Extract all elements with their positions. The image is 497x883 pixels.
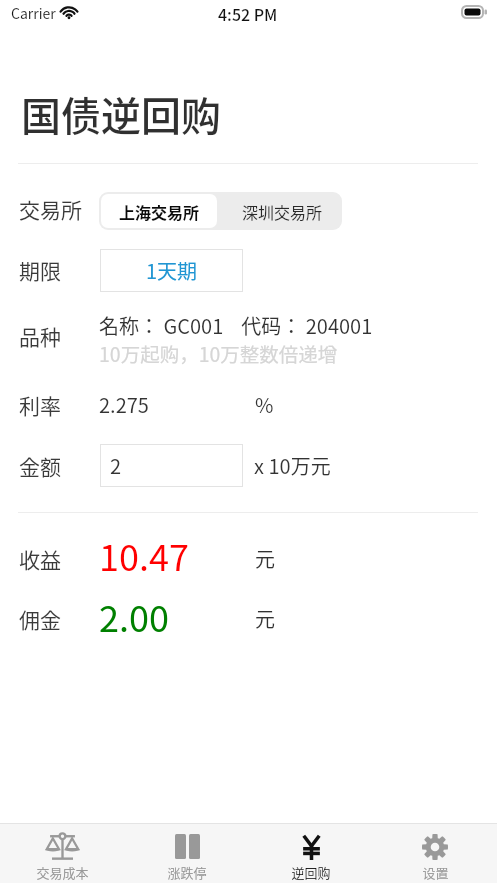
- staticText: 4:52 PM: [218, 2, 278, 25]
- staticText: 设置: [422, 863, 449, 882]
- button[interactable]: 2: [100, 444, 243, 487]
- staticText: 利率: [19, 390, 61, 420]
- staticText: 10万起购，10万整数倍递增: [99, 339, 338, 367]
- staticText: 元: [255, 544, 275, 573]
- staticText: 1天期: [146, 256, 198, 285]
- staticText: Carrier: [11, 3, 56, 23]
- staticText: 涨跌停: [167, 863, 207, 882]
- staticText: 金额: [19, 451, 61, 481]
- staticText: 名称： GC001 代码： 204001: [99, 311, 373, 340]
- staticText: 品种: [19, 321, 61, 351]
- button[interactable]: 设置: [373, 824, 497, 883]
- button[interactable]: 1天期: [100, 249, 243, 292]
- staticText: 逆回购: [291, 863, 331, 882]
- button[interactable]: 涨跌停: [125, 824, 249, 883]
- staticText: 深圳交易所: [242, 200, 323, 223]
- button[interactable]: 深圳交易所: [221, 194, 342, 228]
- staticText: 收益: [19, 544, 61, 574]
- staticText: %: [255, 390, 274, 419]
- staticText: 交易成本: [36, 863, 89, 882]
- staticText: x 10万元: [254, 451, 331, 480]
- button[interactable]: 上海交易所: [101, 194, 217, 228]
- button[interactable]: 逆回购: [249, 824, 373, 883]
- staticText: 交易所: [19, 194, 82, 224]
- staticText: 2.275: [99, 390, 149, 419]
- button[interactable]: 交易成本: [0, 824, 125, 883]
- staticText: 元: [255, 604, 275, 633]
- staticText: 国债逆回购: [21, 85, 221, 143]
- staticText: 2.00: [99, 590, 169, 642]
- staticText: 期限: [19, 255, 61, 285]
- staticText: 上海交易所: [119, 200, 200, 223]
- staticText: 10.47: [99, 529, 189, 581]
- staticText: 2: [110, 451, 122, 480]
- staticText: 佣金: [19, 604, 61, 634]
